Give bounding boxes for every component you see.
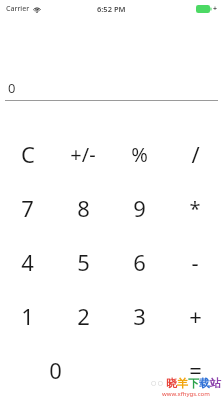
button[interactable]: 0 bbox=[0, 343, 111, 397]
staticText: 6 bbox=[133, 247, 146, 277]
staticText: - bbox=[191, 247, 199, 277]
staticText: 3 bbox=[133, 301, 146, 331]
staticText: + bbox=[189, 301, 202, 331]
staticText: 1 bbox=[21, 301, 34, 331]
button[interactable]: 3 bbox=[111, 289, 167, 343]
staticText: C bbox=[21, 139, 35, 169]
staticText: 0 bbox=[8, 79, 16, 97]
button[interactable]: 1 bbox=[0, 289, 55, 343]
staticText: Carrier bbox=[6, 4, 30, 14]
staticText: 下 bbox=[188, 376, 199, 390]
button[interactable]: * bbox=[167, 181, 223, 235]
button[interactable]: % bbox=[111, 127, 167, 181]
button[interactable]: 4 bbox=[0, 235, 55, 289]
staticText: 羊 bbox=[177, 376, 188, 390]
staticText: 晓 bbox=[166, 376, 177, 390]
button[interactable]: 6 bbox=[111, 235, 167, 289]
staticText: 8 bbox=[77, 193, 90, 223]
staticText: +/- bbox=[70, 141, 96, 168]
staticText: % bbox=[131, 141, 148, 168]
button[interactable]: / bbox=[167, 127, 223, 181]
staticText: 7 bbox=[21, 193, 34, 223]
button[interactable]: 9 bbox=[111, 181, 167, 235]
staticText: 6:52 PM bbox=[97, 4, 126, 14]
button[interactable]: - bbox=[167, 235, 223, 289]
button[interactable]: 0 bbox=[5, 79, 218, 101]
button[interactable]: +/- bbox=[55, 127, 111, 181]
staticText: 2 bbox=[77, 301, 90, 331]
button[interactable]: + bbox=[167, 289, 223, 343]
staticText: 9 bbox=[133, 193, 146, 223]
button[interactable]: 7 bbox=[0, 181, 55, 235]
staticText: 4 bbox=[21, 247, 34, 277]
button[interactable]: 5 bbox=[55, 235, 111, 289]
staticText: 站 bbox=[210, 376, 221, 390]
staticText: www.xfhygs.com bbox=[162, 390, 210, 398]
staticText: = bbox=[189, 355, 202, 385]
button[interactable]: = bbox=[167, 343, 223, 397]
button[interactable]: 8 bbox=[55, 181, 111, 235]
staticText: 载 bbox=[199, 376, 210, 390]
staticText: * bbox=[189, 195, 201, 222]
staticText: 0 bbox=[49, 355, 62, 385]
staticText: / bbox=[191, 139, 200, 169]
staticText: ○ ○ bbox=[151, 379, 164, 387]
staticText: + bbox=[213, 4, 218, 14]
button[interactable]: C bbox=[0, 127, 55, 181]
staticText: 5 bbox=[77, 247, 90, 277]
button[interactable]: 2 bbox=[55, 289, 111, 343]
